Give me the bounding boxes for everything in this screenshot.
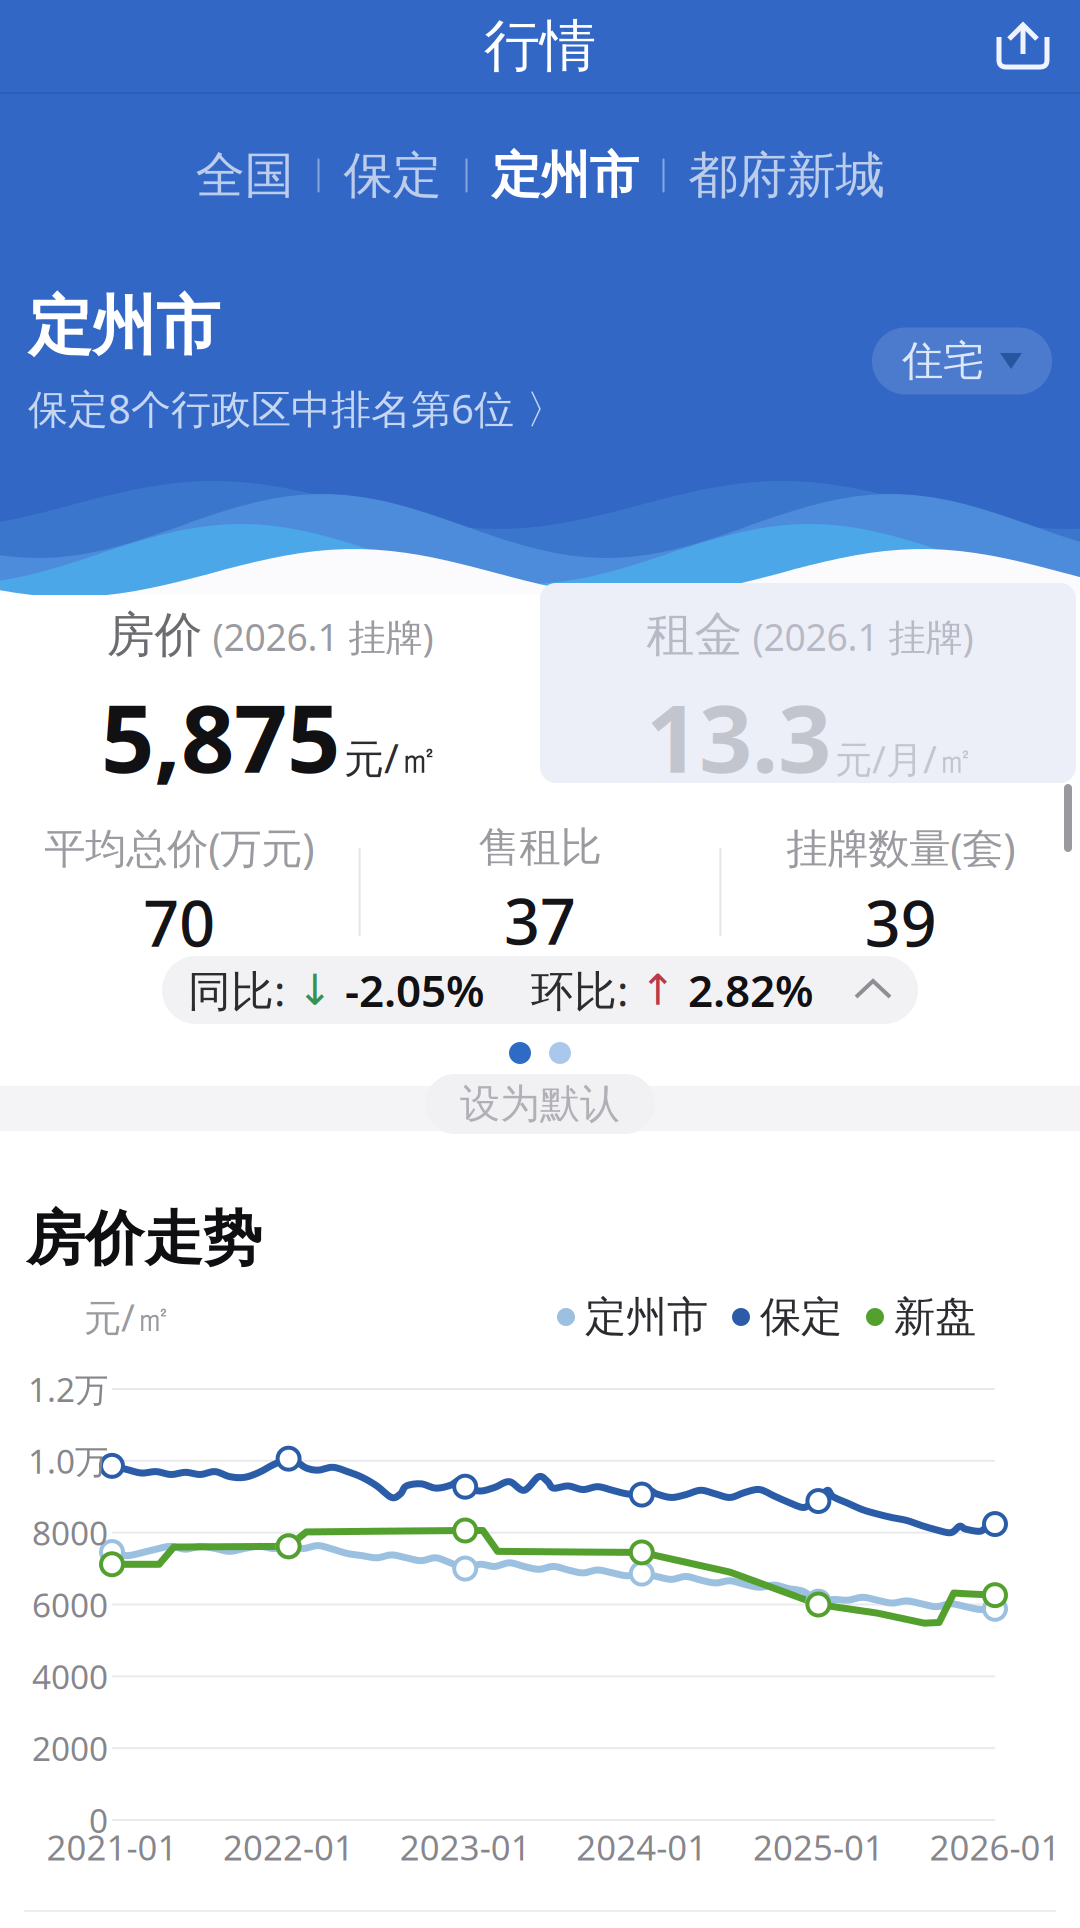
- staticText: 保定: [343, 145, 441, 206]
- staticText: 租金: [646, 606, 742, 665]
- staticText: 保定8个行政区中排名第6位 〉: [28, 382, 566, 435]
- staticText: (2026.1 挂牌): [752, 612, 973, 661]
- staticText: 2.82%: [688, 961, 814, 1019]
- staticText: 元/㎡: [84, 1292, 172, 1342]
- button[interactable]: 保定8个行政区中排名第6位 〉: [28, 382, 566, 435]
- staticText: (2026.1 挂牌): [212, 612, 433, 661]
- staticText: 定州市: [585, 1292, 708, 1342]
- button[interactable]: 设为默认: [425, 1074, 655, 1134]
- staticText: ↑: [640, 966, 676, 1014]
- staticText: 住宅: [902, 336, 984, 386]
- staticText: 37: [504, 879, 576, 962]
- staticText: 70: [143, 881, 215, 964]
- staticText: 4000: [32, 1654, 108, 1698]
- staticText: 8000: [32, 1510, 108, 1555]
- staticText: 全国: [195, 145, 293, 206]
- staticText: 1.2万: [28, 1367, 108, 1411]
- button[interactable]: 住宅: [872, 327, 1052, 394]
- button[interactable]: 保定: [732, 1292, 842, 1342]
- button[interactable]: 分享: [972, 10, 1080, 82]
- button[interactable]: 都府新城: [682, 135, 890, 216]
- staticText: 新盘: [894, 1292, 976, 1342]
- staticText: 定州市: [491, 145, 638, 206]
- staticText: 5,875: [101, 674, 340, 798]
- staticText: 行情: [484, 12, 596, 80]
- staticText: 房价: [106, 606, 202, 665]
- staticText: ↓: [297, 966, 333, 1014]
- staticText: -2.05%: [345, 961, 485, 1019]
- staticText: 都府新城: [688, 145, 884, 206]
- staticText: 2000: [32, 1726, 108, 1770]
- staticText: 元/㎡: [344, 731, 439, 784]
- staticText: 2025-01: [753, 1824, 884, 1870]
- staticText: 售租比: [478, 822, 601, 873]
- staticText: 2022-01: [223, 1824, 354, 1870]
- staticText: 元/月/㎡: [835, 734, 974, 783]
- staticText: 1.0万: [28, 1439, 108, 1483]
- staticText: 39: [865, 881, 937, 964]
- button[interactable]: 定州市: [557, 1292, 708, 1342]
- staticText: 挂牌数量(套): [786, 820, 1015, 875]
- staticText: 2021-01: [46, 1824, 177, 1870]
- staticText: 房价走势: [26, 1203, 262, 1275]
- staticText: 13.3: [646, 674, 831, 798]
- staticText: 定州市: [28, 287, 220, 366]
- staticText: 环比:: [531, 962, 628, 1018]
- staticText: 平均总价(万元): [44, 820, 314, 875]
- staticText: 6000: [32, 1582, 108, 1627]
- staticText: 0: [89, 1798, 108, 1842]
- button[interactable]: 全国: [189, 135, 299, 216]
- staticText: 2024-01: [576, 1824, 707, 1870]
- button[interactable]: 同比:: [162, 956, 918, 1024]
- staticText: 设为默认: [460, 1079, 620, 1128]
- button[interactable]: 新盘: [866, 1292, 976, 1342]
- staticText: 2023-01: [400, 1824, 531, 1870]
- button[interactable]: 定州市: [485, 135, 644, 216]
- staticText: 2026-01: [929, 1824, 1060, 1870]
- button[interactable]: 保定: [337, 135, 447, 216]
- staticText: 保定: [760, 1292, 842, 1342]
- staticText: 同比:: [188, 962, 285, 1018]
